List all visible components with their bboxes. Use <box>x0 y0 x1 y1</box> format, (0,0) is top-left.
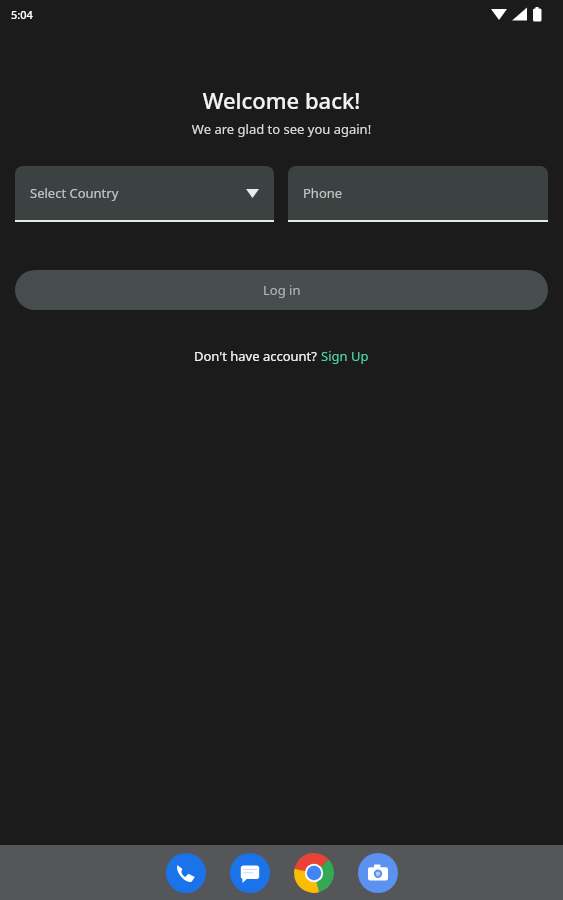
button[interactable]: Chrome <box>294 853 334 893</box>
staticText: Sign Up <box>321 347 369 365</box>
staticText: Welcome back! <box>0 85 563 115</box>
button[interactable]: Phone <box>166 853 206 893</box>
staticText: 5:04 <box>11 7 33 22</box>
staticText: We are glad to see you again! <box>0 120 563 138</box>
button[interactable]: Camera <box>358 853 398 893</box>
button[interactable]: Log in <box>15 270 548 310</box>
staticText: Select Country <box>30 184 119 202</box>
button[interactable]: Sign Up <box>321 347 369 365</box>
button[interactable]: Messages <box>230 853 270 893</box>
button[interactable]: Select Country <box>15 166 274 222</box>
staticText: Phone <box>303 184 343 202</box>
staticText: Log in <box>263 281 301 299</box>
button[interactable]: Phone <box>288 166 548 222</box>
staticText: Don't have account? <box>194 347 321 365</box>
